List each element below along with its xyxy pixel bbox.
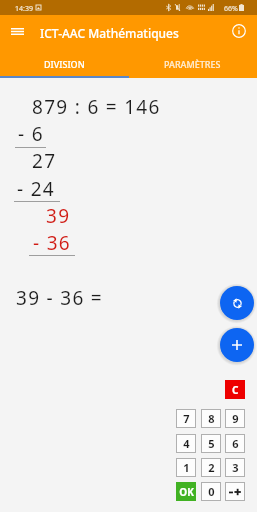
button[interactable]: [225, 482, 245, 501]
staticText: 39: [46, 203, 71, 229]
button[interactable]: 2: [201, 458, 221, 477]
staticText: 879 : 6 = 146: [32, 94, 161, 120]
button[interactable]: 5: [201, 434, 221, 453]
staticText: 7: [183, 411, 190, 426]
button[interactable]: 0: [201, 482, 221, 501]
staticText: ICT-AAC Mathématiques: [40, 25, 179, 41]
button[interactable]: 4: [176, 434, 196, 453]
staticText: 39 - 36 =: [16, 285, 103, 311]
button[interactable]: Open navigation menu: [0, 15, 34, 48]
button[interactable]: DIVISION: [0, 48, 128, 78]
button[interactable]: 9: [225, 409, 245, 428]
staticText: 8: [208, 411, 215, 426]
staticText: 2: [208, 460, 215, 475]
staticText: - 24: [17, 176, 55, 202]
staticText: 6: [232, 436, 239, 451]
button[interactable]: 7: [176, 409, 196, 428]
staticText: 3: [232, 460, 239, 475]
staticText: 4: [183, 436, 190, 451]
staticText: 66%: [224, 4, 238, 14]
button[interactable]: PARAMÈTRES: [128, 48, 257, 78]
staticText: 27: [32, 148, 57, 174]
staticText: 0: [208, 484, 215, 499]
button[interactable]: OK: [176, 482, 196, 501]
button[interactable]: 1: [176, 458, 196, 477]
button[interactable]: Reset: [220, 286, 254, 320]
button[interactable]: Add: [220, 328, 254, 362]
staticText: PARAMÈTRES: [164, 58, 221, 70]
button[interactable]: C: [225, 380, 245, 399]
staticText: 1: [183, 460, 190, 475]
button[interactable]: 6: [225, 434, 245, 453]
button[interactable]: About: [228, 20, 250, 42]
staticText: - 6: [18, 121, 44, 147]
staticText: DIVISION: [44, 58, 85, 70]
staticText: OK: [179, 485, 194, 499]
staticText: - 36: [33, 230, 71, 256]
button[interactable]: 8: [201, 409, 221, 428]
staticText: 5: [208, 436, 215, 451]
staticText: 14:39: [15, 4, 33, 14]
button[interactable]: 3: [225, 458, 245, 477]
staticText: C: [232, 383, 239, 397]
staticText: 9: [232, 411, 239, 426]
